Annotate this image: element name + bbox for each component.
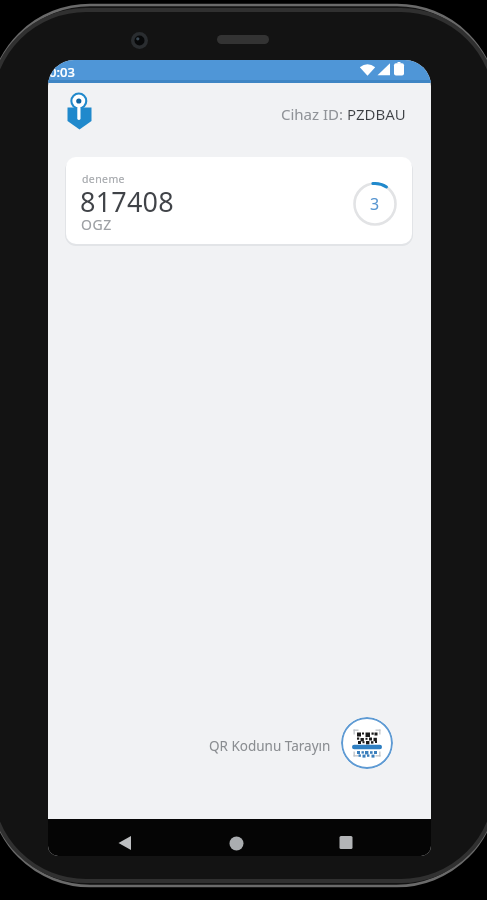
button[interactable]	[341, 717, 393, 769]
staticText: 3	[370, 193, 380, 215]
button[interactable]	[322, 819, 370, 856]
staticText: deneme	[82, 172, 125, 186]
staticText: Cihaz ID:	[281, 104, 347, 124]
staticText: 817408	[80, 183, 174, 220]
staticText: PZDBAU	[347, 104, 406, 124]
staticText: OGZ	[81, 215, 112, 234]
staticText: 0:03	[49, 63, 75, 81]
staticText: QR Kodunu Tarayın	[209, 737, 331, 755]
button[interactable]: deneme	[66, 157, 412, 244]
button[interactable]	[212, 819, 260, 856]
button[interactable]	[100, 819, 148, 856]
